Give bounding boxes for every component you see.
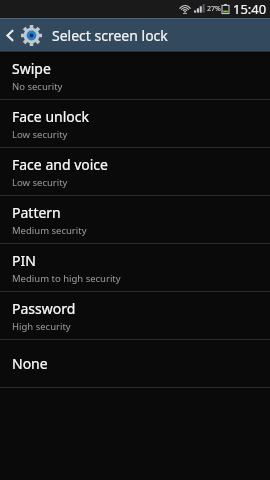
staticText: Swipe bbox=[12, 59, 51, 78]
staticText: High security bbox=[12, 320, 71, 333]
button[interactable]: Navigate up to Settings bbox=[0, 19, 45, 51]
staticText: Password bbox=[12, 299, 76, 318]
button[interactable]: Swipe bbox=[0, 52, 270, 99]
button[interactable]: Face and voice bbox=[0, 148, 270, 195]
staticText: Medium to high security bbox=[12, 272, 121, 285]
staticText: 27% bbox=[207, 4, 221, 14]
button[interactable]: Password bbox=[0, 292, 270, 339]
staticText: Face unlock bbox=[12, 107, 89, 126]
staticText: Low security bbox=[12, 128, 68, 141]
staticText: Select screen lock bbox=[52, 26, 168, 45]
button[interactable]: Face unlock bbox=[0, 100, 270, 147]
staticText: Medium security bbox=[12, 224, 87, 237]
staticText: Face and voice bbox=[12, 155, 108, 174]
staticText: Low security bbox=[12, 176, 68, 189]
staticText: 15:40 bbox=[233, 0, 267, 18]
staticText: None bbox=[12, 354, 48, 373]
staticText: Pattern bbox=[12, 203, 61, 222]
staticText: No security bbox=[12, 80, 63, 93]
button[interactable]: PIN bbox=[0, 244, 270, 291]
button[interactable]: None bbox=[0, 340, 270, 387]
button[interactable]: Pattern bbox=[0, 196, 270, 243]
staticText: PIN bbox=[12, 251, 36, 270]
